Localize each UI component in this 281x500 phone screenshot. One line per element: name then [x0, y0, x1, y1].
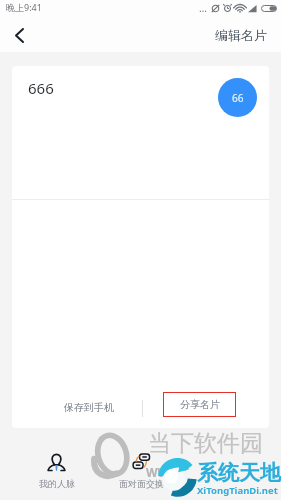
button[interactable]: Back: [0, 18, 34, 52]
staticText: WW: [146, 464, 170, 480]
staticText: 我的人脉: [39, 478, 75, 489]
staticText: 保存到手机: [64, 401, 114, 414]
staticText: 系统天地: [197, 460, 281, 486]
staticText: 666: [28, 78, 54, 98]
staticText: 当下软件园: [148, 429, 263, 458]
button[interactable]: 名片夹: [183, 440, 267, 500]
button[interactable]: 面对面交换: [99, 440, 183, 500]
button[interactable]: 保存到手机: [30, 391, 147, 423]
staticText: 晚上9:41: [6, 1, 42, 13]
staticText: 66: [232, 91, 244, 105]
button[interactable]: 分享名片: [163, 392, 236, 417]
button[interactable]: 我的人脉: [14, 440, 99, 500]
staticText: 名片夹: [212, 478, 239, 489]
staticText: 分享名片: [180, 398, 220, 411]
staticText: …: [199, 1, 207, 15]
staticText: 编辑名片: [215, 27, 267, 43]
button[interactable]: 66: [218, 78, 257, 117]
staticText: 面对面交换: [119, 478, 164, 489]
staticText: XiTongTianDi.net: [197, 484, 278, 497]
